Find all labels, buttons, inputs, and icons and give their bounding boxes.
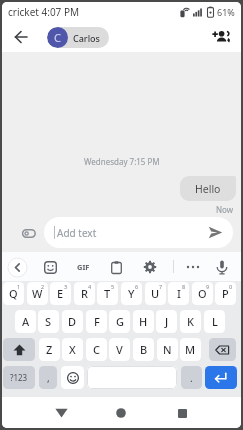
- button[interactable]: [209, 338, 236, 361]
- staticText: 5: [111, 283, 115, 290]
- button[interactable]: [10, 26, 32, 48]
- staticText: 0: [229, 283, 233, 290]
- button[interactable]: Y: [121, 282, 142, 305]
- button[interactable]: U: [145, 282, 166, 305]
- button[interactable]: .: [181, 366, 202, 389]
- staticText: B: [140, 342, 148, 357]
- staticText: cricket 4:07 PM: [8, 5, 80, 19]
- staticText: N: [163, 342, 172, 357]
- button[interactable]: [205, 366, 237, 389]
- staticText: L: [212, 314, 218, 329]
- button[interactable]: E: [50, 282, 71, 305]
- staticText: F: [94, 314, 100, 329]
- staticText: .: [190, 371, 193, 385]
- staticText: R: [81, 286, 88, 301]
- button[interactable]: C: [86, 338, 107, 361]
- staticText: 61%: [217, 6, 235, 18]
- staticText: Wednesday 7:15 PM: [84, 156, 160, 167]
- staticText: Z: [46, 342, 53, 357]
- staticText: M: [185, 342, 196, 357]
- button[interactable]: G: [109, 310, 130, 333]
- staticText: P: [222, 286, 229, 301]
- staticText: GIF: [77, 262, 90, 272]
- button[interactable]: [210, 255, 234, 279]
- staticText: D: [68, 314, 77, 329]
- staticText: ?123: [10, 372, 28, 383]
- button[interactable]: N: [157, 338, 178, 361]
- button[interactable]: R: [74, 282, 95, 305]
- button[interactable]: H: [133, 310, 154, 333]
- button[interactable]: J: [156, 310, 177, 333]
- staticText: W: [32, 286, 43, 301]
- staticText: Hello: [195, 182, 221, 196]
- button[interactable]: X: [62, 338, 83, 361]
- staticText: J: [165, 314, 169, 329]
- button[interactable]: M: [180, 338, 201, 361]
- button[interactable]: [170, 401, 194, 425]
- staticText: ,: [47, 371, 50, 385]
- staticText: Now: [216, 204, 234, 215]
- staticText: I: [177, 286, 181, 301]
- button[interactable]: [38, 255, 62, 279]
- staticText: 9: [206, 283, 210, 290]
- button[interactable]: [210, 26, 232, 48]
- staticText: 8: [182, 283, 186, 290]
- staticText: H: [139, 314, 148, 329]
- button[interactable]: [181, 255, 205, 279]
- button[interactable]: L: [204, 310, 225, 333]
- staticText: V: [116, 342, 123, 357]
- staticText: 2: [41, 283, 45, 290]
- button[interactable]: [109, 401, 133, 425]
- button[interactable]: ?123: [3, 366, 35, 389]
- staticText: Q: [9, 286, 18, 301]
- button[interactable]: ,: [39, 366, 57, 389]
- staticText: 3: [64, 283, 68, 290]
- staticText: 7: [159, 283, 163, 290]
- button[interactable]: P: [215, 282, 236, 305]
- button[interactable]: V: [109, 338, 130, 361]
- button[interactable]: D: [62, 310, 83, 333]
- staticText: Carlos: [73, 32, 100, 44]
- button[interactable]: [61, 366, 84, 389]
- button[interactable]: B: [133, 338, 154, 361]
- button[interactable]: Q: [3, 282, 24, 305]
- staticText: S: [45, 314, 52, 329]
- button[interactable]: [138, 255, 162, 279]
- button[interactable]: [104, 255, 128, 279]
- button[interactable]: [3, 338, 35, 361]
- button[interactable]: [5, 255, 29, 279]
- button[interactable]: Hello: [180, 176, 236, 201]
- staticText: 4: [88, 283, 92, 290]
- staticText: Y: [128, 286, 135, 301]
- button[interactable]: W: [27, 282, 48, 305]
- staticText: A: [22, 314, 30, 329]
- button[interactable]: F: [86, 310, 107, 333]
- staticText: U: [151, 286, 160, 301]
- staticText: O: [198, 286, 207, 301]
- button[interactable]: [49, 401, 73, 425]
- button[interactable]: Add text: [44, 217, 233, 248]
- button[interactable]: Z: [39, 338, 60, 361]
- staticText: Add text: [57, 226, 97, 240]
- button[interactable]: I: [168, 282, 189, 305]
- button[interactable]: K: [180, 310, 201, 333]
- button[interactable]: A: [15, 310, 36, 333]
- staticText: C: [54, 30, 61, 45]
- button[interactable]: C: [47, 27, 109, 48]
- staticText: 1: [17, 283, 21, 290]
- button[interactable]: S: [38, 310, 59, 333]
- staticText: K: [187, 314, 194, 329]
- staticText: 6: [135, 283, 139, 290]
- button[interactable]: [87, 366, 177, 389]
- button[interactable]: T: [97, 282, 118, 305]
- button[interactable]: O: [192, 282, 213, 305]
- staticText: G: [116, 314, 124, 329]
- staticText: X: [69, 342, 76, 357]
- button[interactable]: [16, 220, 42, 246]
- button[interactable]: GIF: [71, 255, 95, 279]
- staticText: E: [57, 286, 64, 301]
- staticText: C: [93, 342, 100, 357]
- staticText: T: [104, 286, 111, 301]
